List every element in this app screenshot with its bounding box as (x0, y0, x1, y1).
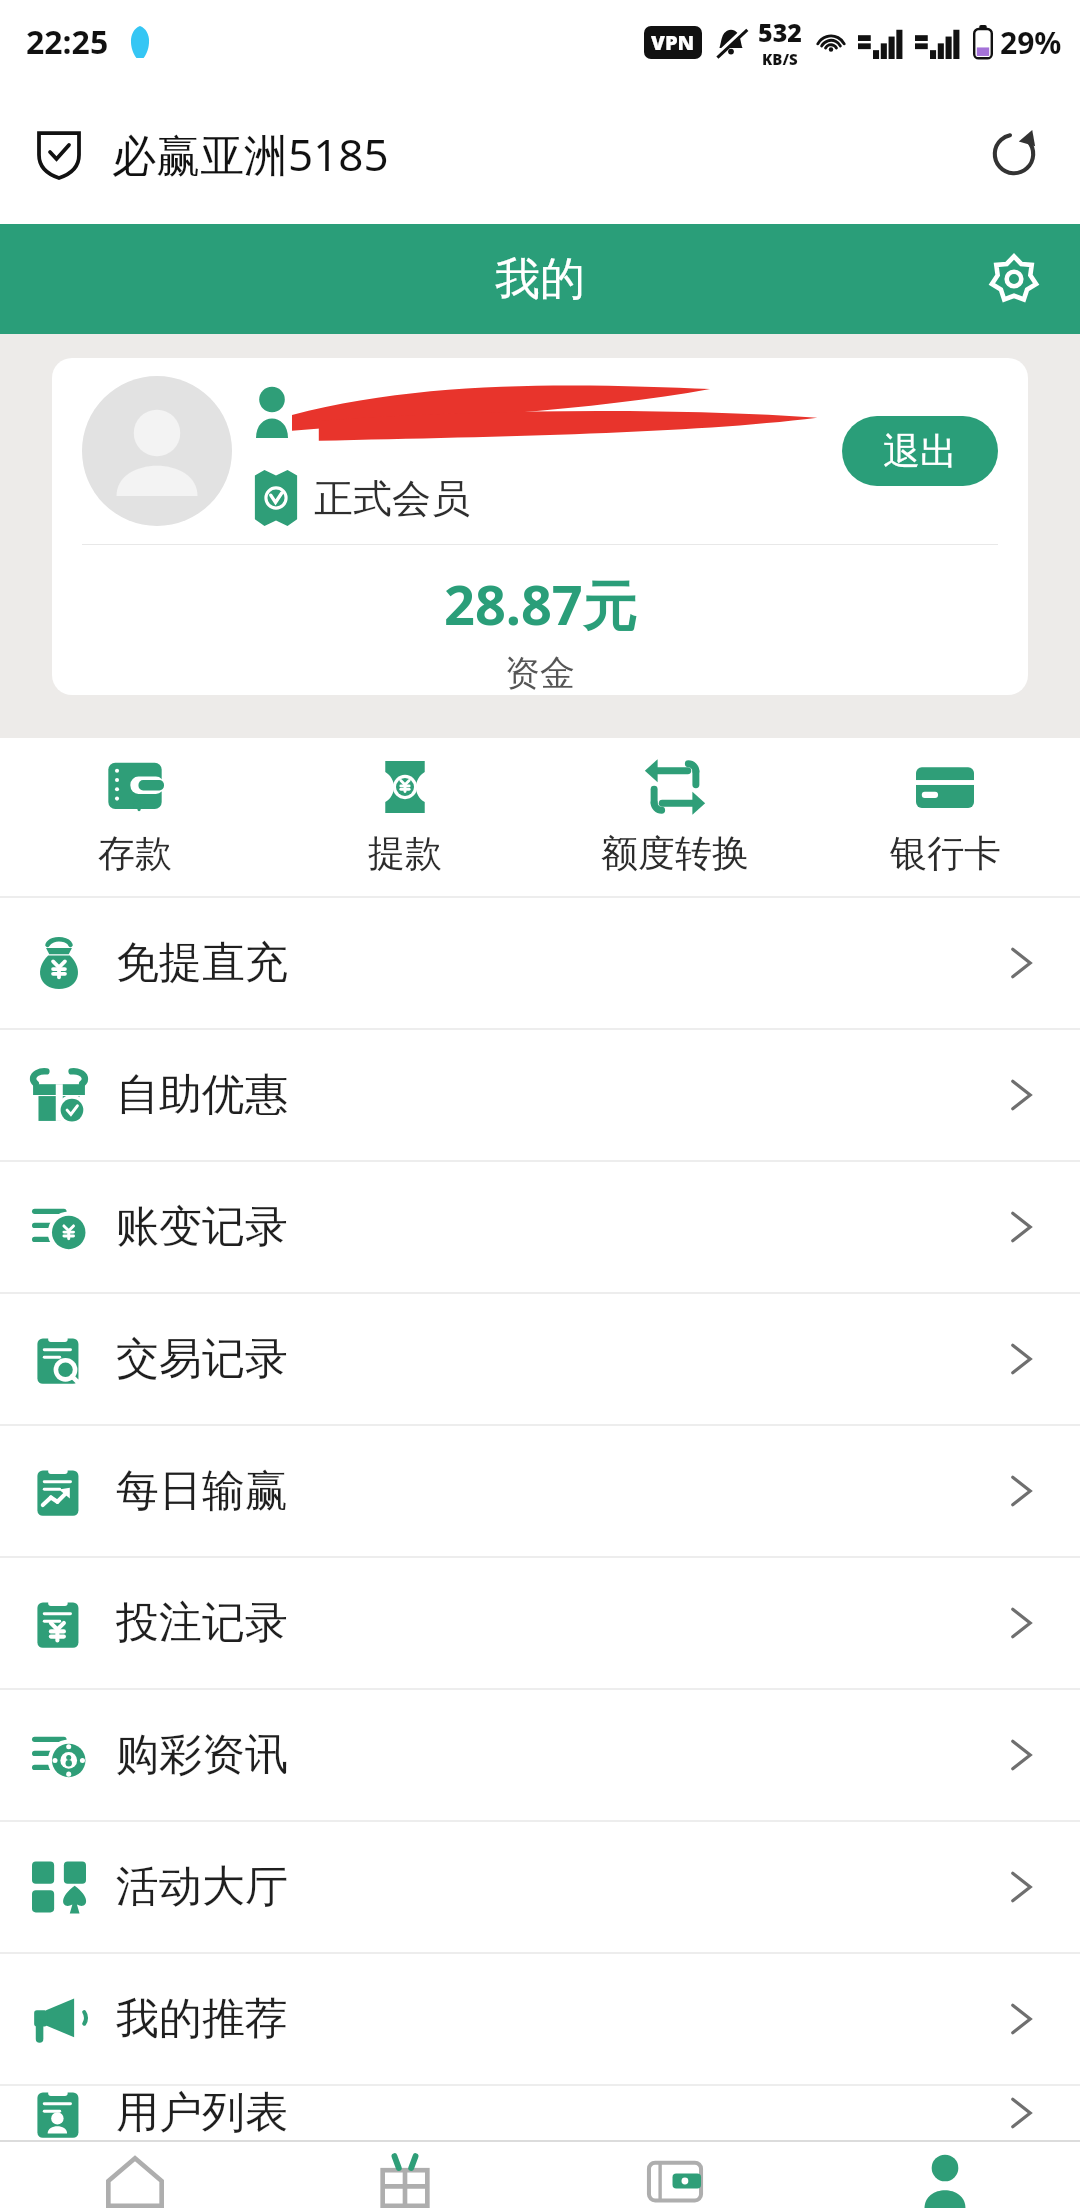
staticText: 提款 (368, 830, 442, 877)
staticText: 退出 (883, 428, 957, 475)
staticText: 每日输赢 (116, 1464, 288, 1518)
staticText: 22:25 (26, 20, 109, 64)
staticText: 免提直充 (116, 936, 288, 990)
staticText: 额度转换 (601, 830, 749, 877)
staticText: 投注记录 (116, 1596, 288, 1650)
button[interactable]: Home (0, 2142, 270, 2208)
staticText: 账变记录 (116, 1200, 288, 1254)
button[interactable]: 每日输赢 (0, 1426, 1080, 1556)
staticText: 存款 (98, 830, 172, 877)
staticText: 购彩资讯 (116, 1728, 288, 1782)
button[interactable]: Settings (974, 239, 1054, 319)
staticText: 自助优惠 (116, 1068, 288, 1122)
staticText: 532 (758, 15, 802, 49)
staticText: 28.87元 (444, 567, 637, 641)
button[interactable]: 免提直充 (0, 898, 1080, 1028)
button[interactable]: 自助优惠 (0, 1030, 1080, 1160)
staticText: KB/S (762, 49, 798, 69)
staticText: 银行卡 (890, 830, 1001, 877)
button[interactable]: 我的推荐 (0, 1954, 1080, 2084)
staticText: 资金 (505, 651, 575, 695)
staticText: 用户列表 (116, 2086, 288, 2140)
button[interactable]: Profile (810, 2142, 1080, 2208)
staticText: 我的 (495, 251, 585, 308)
button[interactable]: 额度转换 (540, 738, 810, 896)
button[interactable]: Games (270, 2142, 540, 2208)
button[interactable]: 购彩资讯 (0, 1690, 1080, 1820)
button[interactable]: 活动大厅 (0, 1822, 1080, 1952)
button[interactable]: 投注记录 (0, 1558, 1080, 1688)
staticText: 29% (1000, 22, 1062, 63)
button[interactable]: Refresh (982, 122, 1046, 186)
staticText: 交易记录 (116, 1332, 288, 1386)
button[interactable]: 银行卡 (810, 738, 1080, 896)
button[interactable]: 账变记录 (0, 1162, 1080, 1292)
staticText: 正式会员 (314, 474, 470, 523)
staticText: 活动大厅 (116, 1860, 288, 1914)
staticText: 我的推荐 (116, 1992, 288, 2046)
button[interactable]: 提款 (270, 738, 540, 896)
button[interactable]: 存款 (0, 738, 270, 896)
button[interactable]: 用户列表 (0, 2086, 1080, 2140)
button[interactable]: 交易记录 (0, 1294, 1080, 1424)
staticText: 必赢亚洲5185 (112, 124, 389, 184)
button[interactable]: Wallet (540, 2142, 810, 2208)
staticText: VPN (651, 29, 695, 56)
button[interactable]: 退出 (842, 416, 998, 486)
